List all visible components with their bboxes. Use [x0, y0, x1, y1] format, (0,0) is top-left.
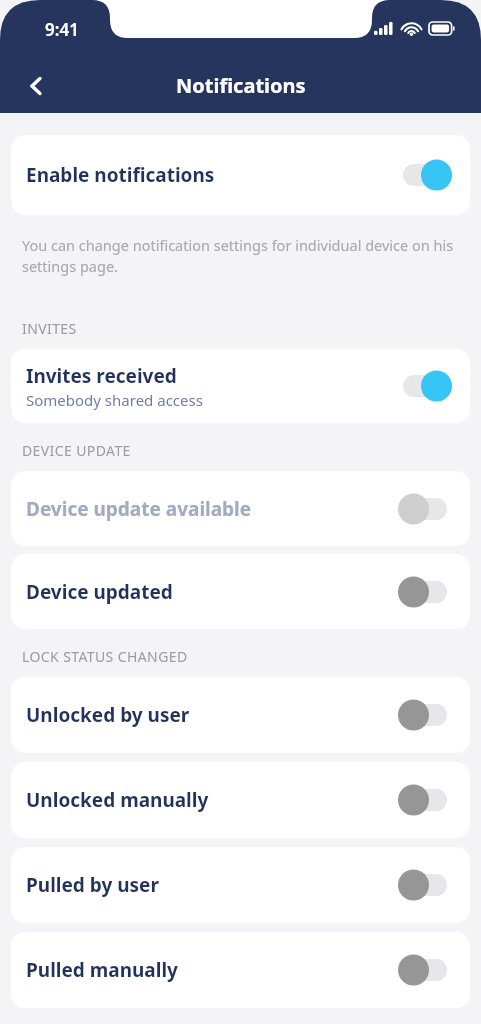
- button[interactable]: Invites received: [11, 349, 470, 423]
- button[interactable]: Switch off: [398, 698, 452, 732]
- staticText: Invites received: [26, 363, 177, 389]
- button[interactable]: Device updated: [11, 554, 470, 629]
- staticText: Device update available: [26, 496, 252, 522]
- button[interactable]: Back: [12, 62, 60, 110]
- staticText: Enable notifications: [26, 162, 215, 188]
- staticText: 9:41: [45, 18, 79, 41]
- staticText: LOCK STATUS CHANGED: [22, 647, 188, 666]
- staticText: Pulled by user: [26, 872, 159, 898]
- button[interactable]: Switch off: [398, 953, 452, 987]
- button[interactable]: Switch on: [398, 158, 452, 192]
- button[interactable]: Unlocked manually: [11, 762, 470, 838]
- button[interactable]: Switch off: [398, 492, 452, 526]
- staticText: Somebody shared access: [26, 390, 203, 410]
- staticText: Device updated: [26, 579, 173, 605]
- button[interactable]: Switch off: [398, 783, 452, 817]
- staticText: DEVICE UPDATE: [22, 441, 131, 460]
- button[interactable]: Pulled manually: [11, 932, 470, 1008]
- button[interactable]: Device update available: [11, 471, 470, 546]
- button[interactable]: Switch off: [398, 868, 452, 902]
- staticText: Unlocked by user: [26, 702, 190, 728]
- staticText: You can change notification settings for…: [22, 235, 465, 277]
- button[interactable]: Switch off: [398, 575, 452, 609]
- button[interactable]: Unlocked by user: [11, 677, 470, 753]
- staticText: INVITES: [22, 319, 77, 338]
- staticText: Pulled manually: [26, 957, 178, 983]
- button[interactable]: Pulled by user: [11, 847, 470, 923]
- button[interactable]: Switch on: [398, 369, 452, 403]
- button[interactable]: Enable notifications: [11, 135, 470, 215]
- staticText: Unlocked manually: [26, 787, 209, 813]
- staticText: Notifications: [176, 72, 306, 99]
